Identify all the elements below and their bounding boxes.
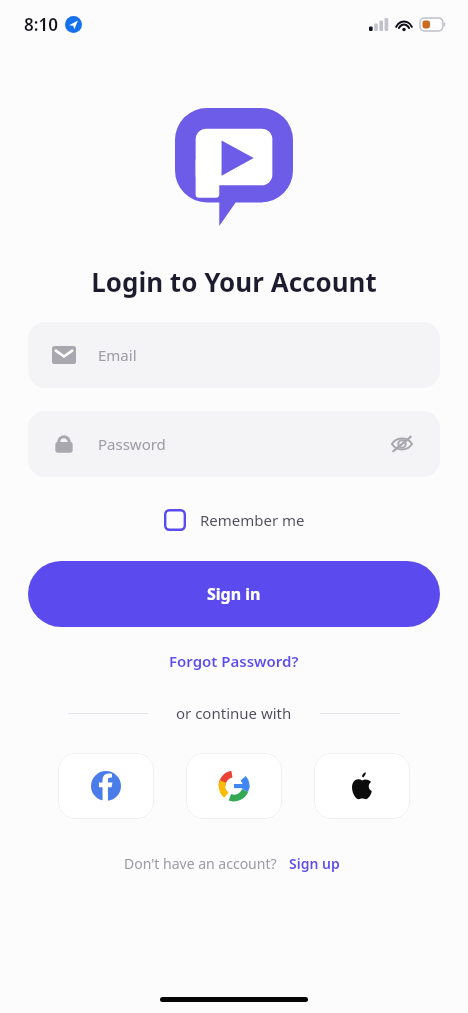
- button[interactable]: Sign in with Apple: [314, 753, 410, 819]
- staticText: Email: [98, 345, 137, 365]
- button[interactable]: Sign in: [28, 561, 440, 627]
- staticText: Remember me: [200, 510, 305, 530]
- button[interactable]: Remember me: [160, 505, 309, 535]
- button[interactable]: Sign up: [285, 851, 344, 876]
- staticText: or continue with: [176, 703, 292, 723]
- staticText: Don't have an account?: [124, 854, 277, 873]
- staticText: Sign in: [207, 583, 261, 605]
- staticText: Password: [98, 434, 166, 454]
- staticText: 8:10: [24, 13, 58, 36]
- staticText: Sign up: [289, 854, 340, 873]
- button[interactable]: Password: [28, 411, 440, 477]
- button[interactable]: Email: [28, 322, 440, 388]
- staticText: Login to Your Account: [0, 264, 468, 299]
- button[interactable]: Show password: [388, 430, 416, 458]
- button[interactable]: Sign in with Google: [186, 753, 282, 819]
- button[interactable]: Sign in with Facebook: [58, 753, 154, 819]
- staticText: Forgot Password?: [169, 651, 299, 671]
- button[interactable]: Forgot Password?: [159, 645, 309, 677]
